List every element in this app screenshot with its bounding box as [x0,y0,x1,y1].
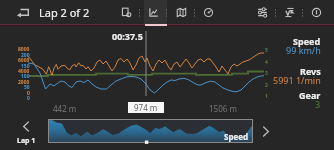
staticText: 99 km/h [286,44,321,56]
staticText: Gear [299,89,321,101]
staticText: 1506 m [209,103,237,114]
button[interactable]: Compare [278,0,300,24]
staticText: 0 [27,95,30,102]
staticText: 100 [21,73,30,80]
staticText: 5991 1/min [273,74,321,86]
staticText: 150 [21,63,30,70]
button[interactable]: Next lap [252,118,280,144]
button[interactable]: Speed [0,35,321,55]
staticText: Speed [293,35,321,47]
staticText: 2 [265,82,268,89]
staticText: 2000 [18,79,30,86]
staticText: 4 [265,59,268,66]
staticText: 1 [265,93,268,100]
button[interactable]: Previous lap [9,118,43,150]
button[interactable]: Revs [0,65,321,85]
button[interactable]: Report [115,0,137,24]
staticText: 5 [265,47,268,54]
staticText: 200 [21,52,30,59]
staticText: 3 [315,98,321,110]
button[interactable]: Settings [251,0,273,24]
staticText: Lap 2 of 2 [39,5,90,20]
staticText: 00:37.5 [112,30,143,42]
button[interactable]: Gear [0,89,321,109]
button[interactable]: Lap 2 of 2 [0,0,98,24]
staticText: Lap 1 [17,136,36,146]
button[interactable]: Gauges [197,0,219,24]
staticText: Speed [224,131,249,142]
staticText: 442 m [53,103,77,114]
staticText: Revs [300,65,321,77]
button[interactable]: Chart [142,0,164,24]
staticText: 50 [24,84,30,91]
staticText: 974 m [134,102,158,113]
button[interactable]: Info [305,0,327,24]
staticText: 6000 [18,57,30,64]
staticText: 3 [265,70,268,77]
staticText: 0 [27,90,30,97]
staticText: 8000 [18,46,30,53]
button[interactable]: Map [170,0,192,24]
staticText: 4000 [18,68,30,75]
